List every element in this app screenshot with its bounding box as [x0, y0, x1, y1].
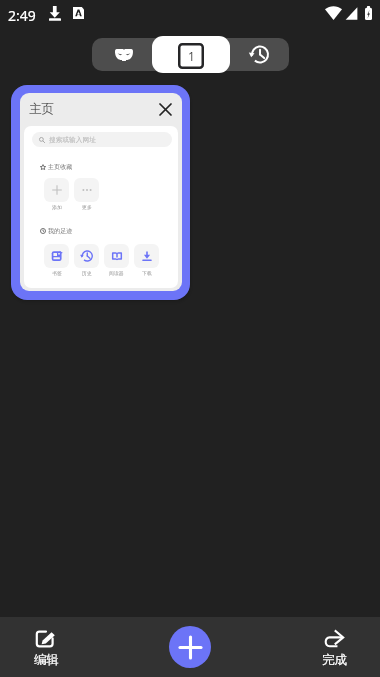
button[interactable]: [74, 244, 99, 268]
staticText: 历史: [82, 270, 92, 276]
staticText: 更多: [82, 204, 92, 210]
button[interactable]: [134, 244, 159, 268]
button[interactable]: 主页 tab: [11, 85, 190, 300]
button[interactable]: 完成: [308, 623, 360, 673]
staticText: 下载: [142, 270, 152, 276]
staticText: 添加: [52, 204, 62, 210]
staticText: 我的足迹: [48, 227, 73, 235]
staticText: 2:49: [8, 6, 36, 25]
button[interactable]: 主页收藏: [40, 163, 73, 171]
button[interactable]: Recent tabs: [229, 38, 289, 71]
staticText: 1: [188, 48, 195, 64]
staticText: 主页收藏: [48, 163, 73, 171]
staticText: 编辑: [34, 652, 59, 668]
staticText: 完成: [322, 652, 347, 668]
button[interactable]: New tab: [169, 626, 211, 668]
button[interactable]: Tabs, 1 open: [152, 36, 230, 73]
button[interactable]: [44, 244, 69, 268]
staticText: 书签: [52, 270, 62, 276]
staticText: 阅读器: [109, 270, 124, 276]
button[interactable]: 编辑: [20, 623, 72, 673]
staticText: 搜索或输入网址: [49, 136, 96, 144]
button[interactable]: Close tab: [157, 101, 173, 117]
button[interactable]: [44, 178, 69, 202]
button[interactable]: [104, 244, 129, 268]
button[interactable]: Incognito tabs: [92, 38, 152, 71]
button[interactable]: [74, 178, 99, 202]
staticText: 主页: [29, 101, 54, 117]
button[interactable]: 搜索或输入网址: [32, 132, 172, 147]
button[interactable]: 我的足迹: [40, 227, 73, 235]
